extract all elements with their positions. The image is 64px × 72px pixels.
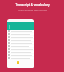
button[interactable] xyxy=(7,57,34,59)
button[interactable] xyxy=(7,42,34,44)
staticText: Transcript & vocabulary xyxy=(15,3,50,7)
button[interactable] xyxy=(7,30,34,32)
button[interactable] xyxy=(7,54,34,56)
button[interactable] xyxy=(7,45,34,47)
button[interactable] xyxy=(7,33,34,35)
button[interactable] xyxy=(7,51,34,53)
button[interactable] xyxy=(7,36,34,38)
button[interactable] xyxy=(7,48,34,50)
button[interactable] xyxy=(7,39,34,41)
staticText: Learn english with stories xyxy=(18,8,47,11)
